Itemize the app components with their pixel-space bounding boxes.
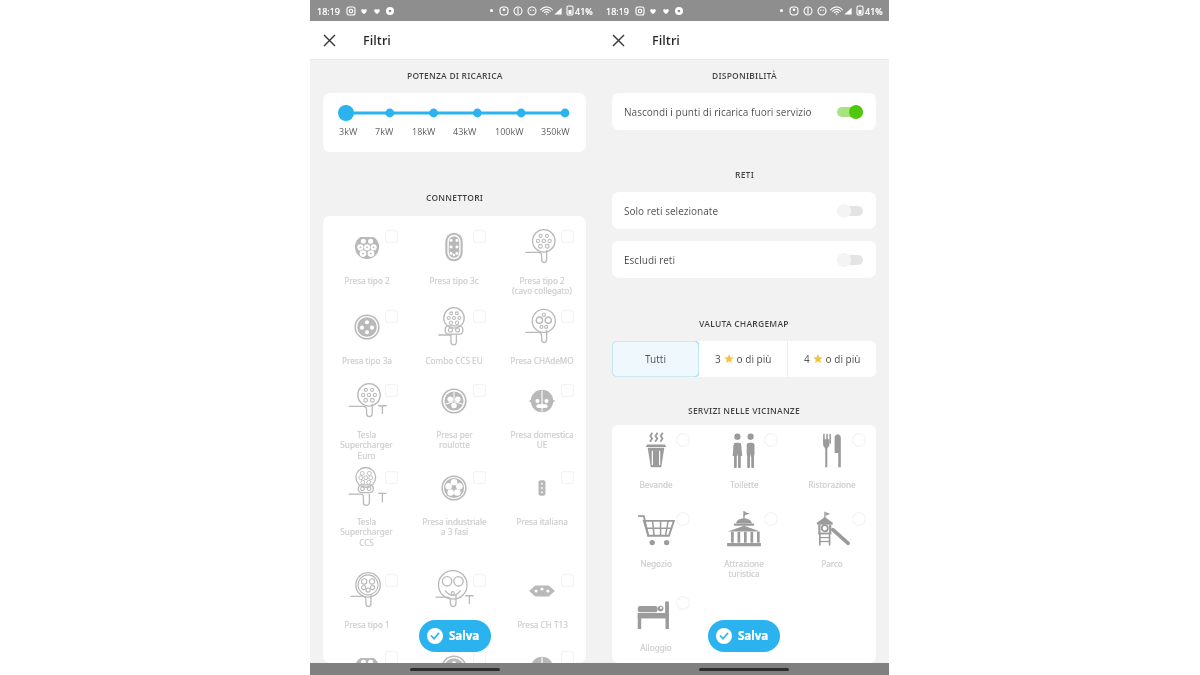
button[interactable]: Presa tipo 1 (323, 560, 410, 663)
button[interactable]: Tesla Supercharger Euro (323, 370, 410, 476)
staticText: Ristorazione (808, 479, 856, 490)
staticText: Presa italiana (516, 516, 568, 527)
button[interactable]: Bevande (612, 425, 700, 515)
button[interactable]: Attrazione turistica (700, 504, 788, 594)
staticText: Nascondi i punti di ricarica fuori servi… (624, 105, 812, 119)
button[interactable]: Tutti (612, 341, 699, 377)
staticText: Presa tipo 2 (344, 275, 390, 286)
button[interactable]: Presa italiana (498, 457, 586, 563)
staticText: Salva (449, 628, 480, 644)
button[interactable]: Salva (419, 620, 491, 652)
button[interactable]: Nascondi i punti di ricarica fuori servi… (612, 93, 876, 130)
staticText: Presa tipo 2 (cavo collegato) (512, 275, 572, 297)
staticText: Presa industriale a 3 fasi (422, 516, 487, 538)
button[interactable] (498, 637, 586, 663)
staticText: o di più (823, 352, 861, 366)
staticText: Filtri (652, 32, 680, 49)
button[interactable]: Presa per roulotte (410, 370, 498, 476)
staticText: Bevande (639, 479, 673, 490)
staticText: POTENZA DI RICARICA (407, 70, 503, 82)
staticText: Tutti (645, 352, 667, 366)
button[interactable] (323, 637, 410, 663)
staticText: Tesla Supercharger CCS (340, 516, 393, 549)
button[interactable]: Close (599, 21, 638, 60)
staticText: 350kW (541, 125, 570, 137)
staticText: 18:19 (606, 5, 630, 17)
staticText: RETI (735, 169, 754, 181)
button[interactable]: Presa CHAdeMO (498, 296, 586, 402)
button[interactable]: Close (310, 21, 349, 60)
staticText: 18:19 (317, 5, 341, 17)
button[interactable]: Presa tipo 2 (323, 216, 410, 322)
staticText: Escludi reti (624, 253, 675, 267)
button[interactable]: Solo reti selezionate (612, 192, 876, 229)
staticText: Parco (821, 558, 843, 569)
staticText: Salva (738, 628, 769, 644)
staticText: 4 (804, 352, 813, 366)
staticText: Presa per roulotte (436, 429, 473, 451)
staticText: DISPONIBILITÀ (712, 70, 777, 82)
staticText: Solo reti selezionate (624, 204, 719, 218)
staticText: Toilette (730, 479, 759, 490)
staticText: Presa tipo 3a (342, 355, 392, 366)
staticText: Presa CHAdeMO (510, 355, 574, 366)
button[interactable]: Parco (788, 504, 876, 594)
button[interactable]: Combo CCS EU (410, 296, 498, 402)
staticText: Presa domestica UE (510, 429, 574, 451)
button[interactable]: Salva (708, 620, 780, 652)
button[interactable]: Escludi reti (612, 241, 876, 278)
button[interactable] (410, 637, 498, 663)
button[interactable]: Alloggio (612, 588, 700, 663)
button[interactable]: Presa tipo 2 (cavo collegato) (498, 216, 586, 322)
button[interactable]: Tesla Supercharger CCS (323, 457, 410, 563)
button[interactable]: Presa CH T13 (498, 560, 586, 663)
button[interactable]: Presa domestica UE (498, 370, 586, 476)
staticText: VALUTA CHARGEMAP (699, 318, 789, 330)
button[interactable]: Toilette (700, 425, 788, 515)
staticText: 3 (715, 352, 724, 366)
button[interactable]: 3 (699, 341, 787, 377)
button[interactable]: Negozio (612, 504, 700, 594)
staticText: Presa CH T13 (517, 619, 568, 630)
staticText: Tesla Supercharger Euro (340, 429, 393, 462)
staticText: 100kW (495, 125, 524, 137)
button[interactable] (410, 560, 498, 663)
staticText: 41% (865, 5, 883, 17)
staticText: 43kW (453, 125, 477, 137)
button[interactable]: Ristorazione (788, 425, 876, 515)
button[interactable]: Presa tipo 3c (410, 216, 498, 322)
button[interactable]: Presa industriale a 3 fasi (410, 457, 498, 563)
staticText: 3kW (339, 125, 358, 137)
staticText: 41% (575, 5, 593, 17)
staticText: Presa tipo 1 (344, 619, 390, 630)
staticText: Filtri (363, 32, 391, 49)
staticText: Attrazione turistica (724, 558, 764, 580)
staticText: Combo CCS EU (425, 355, 483, 366)
staticText: 7kW (375, 125, 394, 137)
staticText: Presa tipo 3c (429, 275, 479, 286)
staticText: CONNETTORI (426, 192, 484, 204)
staticText: Alloggio (640, 642, 672, 653)
staticText: Negozio (640, 558, 672, 569)
staticText: o di più (734, 352, 772, 366)
button[interactable]: Presa tipo 3a (323, 296, 410, 402)
staticText: SERVIZI NELLE VICINANZE (688, 405, 800, 417)
staticText: 18kW (412, 125, 436, 137)
button[interactable]: 4 (788, 341, 876, 377)
